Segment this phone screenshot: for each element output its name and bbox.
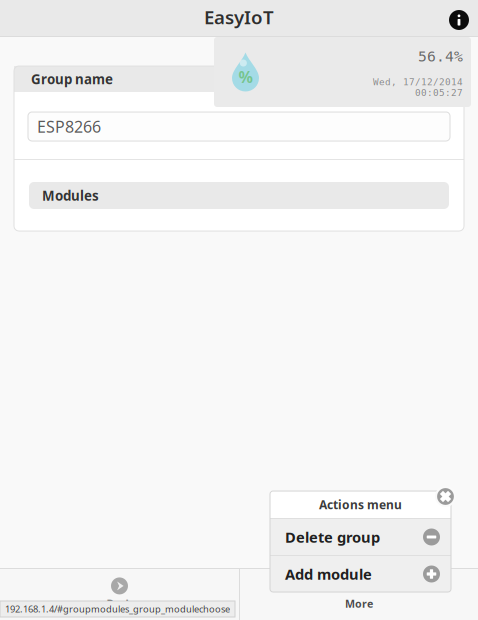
- staticText: 00:05:27: [415, 87, 463, 98]
- button[interactable]: Modules: [14, 160, 464, 231]
- staticText: %: [238, 66, 252, 87]
- staticText: 192.168.1.4/#groupmodules_group_modulech…: [5, 603, 230, 615]
- staticText: Modules: [42, 187, 99, 204]
- staticText: Delete group: [285, 527, 380, 547]
- staticText: Wed, 17/12/2014: [373, 77, 463, 87]
- staticText: More: [345, 596, 373, 611]
- staticText: 56.4%: [418, 48, 463, 65]
- staticText: EasyIoT: [204, 5, 274, 29]
- staticText: Add module: [285, 564, 372, 584]
- staticText: Actions menu: [319, 496, 402, 512]
- button[interactable]: Close actions menu: [435, 491, 451, 507]
- button[interactable]: Add module: [270, 556, 451, 592]
- button[interactable]: Delete group: [270, 519, 451, 555]
- button[interactable]: Info: [449, 7, 478, 30]
- staticText: Group name: [31, 70, 113, 88]
- staticText: Back: [106, 596, 132, 611]
- staticText: ESP8266: [37, 116, 101, 137]
- button[interactable]: More: [240, 568, 478, 620]
- button[interactable]: Back: [0, 568, 239, 620]
